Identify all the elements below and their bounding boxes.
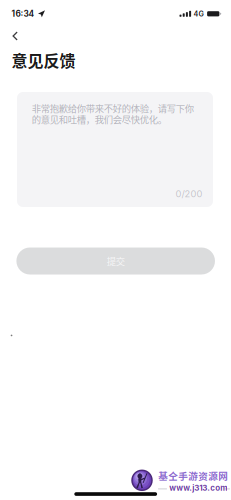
staticText: 0/200: [175, 188, 202, 199]
staticText: 意见反馈: [11, 48, 75, 72]
staticText: www.j313.com: [169, 483, 227, 493]
staticText: 4G: [193, 9, 203, 18]
staticText: 提交: [107, 254, 125, 268]
staticText: 基仝手游资源网: [158, 469, 228, 482]
staticText: 非常抱歉给你带来不好的体验，请写下你: [32, 101, 194, 115]
button[interactable]: Back: [0, 0, 26, 22]
button[interactable]: 提交: [16, 247, 215, 274]
staticText: 的意见和吐槽，我们会尽快优化。: [32, 112, 167, 126]
staticText: 16:34: [12, 9, 35, 19]
